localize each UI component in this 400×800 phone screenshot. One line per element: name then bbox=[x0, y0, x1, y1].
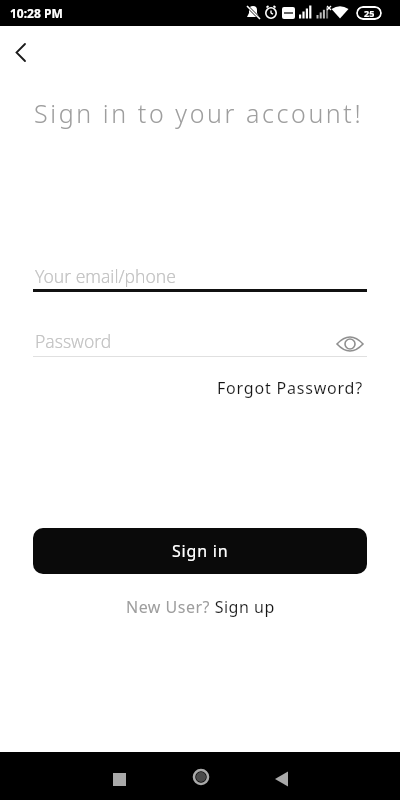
staticText: Sign in bbox=[172, 540, 229, 562]
staticText: Sign in to your account! bbox=[34, 96, 364, 130]
button[interactable] bbox=[188, 764, 214, 790]
button[interactable]: Forgot Password? bbox=[217, 377, 364, 399]
staticText: 10:28 PM bbox=[10, 5, 63, 21]
button[interactable]: Sign in bbox=[33, 528, 367, 574]
button[interactable] bbox=[332, 330, 366, 358]
staticText: Your email/phone bbox=[35, 264, 176, 288]
button[interactable] bbox=[269, 766, 295, 792]
staticText: Password bbox=[35, 329, 112, 353]
button[interactable]: New User? Sign up bbox=[126, 596, 275, 618]
button[interactable] bbox=[106, 766, 132, 792]
button[interactable] bbox=[8, 36, 44, 72]
staticText: 25 bbox=[364, 7, 375, 19]
